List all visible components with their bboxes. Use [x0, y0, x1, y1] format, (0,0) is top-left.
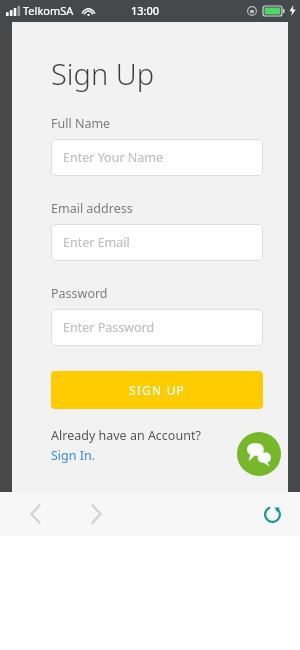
staticText: Password — [51, 285, 108, 302]
button[interactable]: Enter Email — [51, 224, 263, 261]
staticText: Enter Password — [63, 319, 155, 336]
staticText: TelkomSA — [23, 3, 74, 18]
button[interactable]: Forward — [72, 492, 120, 536]
staticText: 13:00 — [131, 3, 160, 18]
staticText: Email address — [51, 200, 133, 217]
button[interactable]: Back — [12, 492, 60, 536]
staticText: Already have an Account? — [51, 427, 201, 444]
staticText: Enter Your Name — [63, 149, 164, 166]
staticText: Sign Up — [51, 54, 155, 93]
staticText: Full Name — [51, 115, 111, 132]
staticText: Enter Email — [63, 234, 130, 251]
button[interactable]: Reload — [250, 492, 294, 536]
button[interactable]: Enter Password — [51, 309, 263, 346]
button[interactable]: SIGN UP — [51, 371, 263, 409]
staticText: Sign In. — [51, 447, 96, 464]
button[interactable]: Sign In. — [51, 447, 96, 464]
button[interactable]: Enter Your Name — [51, 139, 263, 176]
staticText: SIGN UP — [129, 382, 186, 398]
button[interactable]: Chat — [237, 432, 281, 476]
